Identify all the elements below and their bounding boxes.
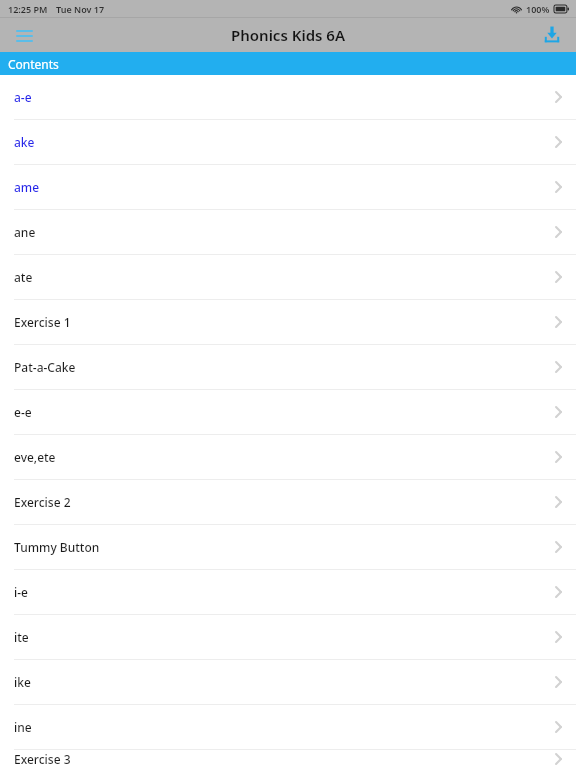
staticText: ine <box>14 719 32 735</box>
button[interactable]: Contents <box>0 52 576 75</box>
staticText: e-e <box>14 404 32 420</box>
staticText: a-e <box>14 89 32 105</box>
button[interactable]: Download <box>534 18 570 52</box>
button[interactable]: ake <box>0 120 576 164</box>
staticText: ane <box>14 224 36 240</box>
staticText: ake <box>14 134 35 150</box>
button[interactable]: a-e <box>0 75 576 119</box>
staticText: Exercise 1 <box>14 314 71 330</box>
staticText: ate <box>14 269 33 285</box>
button[interactable]: ike <box>0 660 576 704</box>
button[interactable]: ite <box>0 615 576 659</box>
button[interactable]: Menu <box>6 18 42 52</box>
staticText: 12:25 PM <box>8 3 48 15</box>
button[interactable]: Pat-a-Cake <box>0 345 576 389</box>
button[interactable]: ine <box>0 705 576 749</box>
button[interactable]: ame <box>0 165 576 209</box>
staticText: Exercise 2 <box>14 494 71 510</box>
staticText: ike <box>14 674 31 690</box>
button[interactable]: Exercise 3 <box>0 750 576 768</box>
staticText: Pat-a-Cake <box>14 359 76 375</box>
button[interactable]: eve,ete <box>0 435 576 479</box>
button[interactable]: Exercise 2 <box>0 480 576 524</box>
button[interactable]: Tummy Button <box>0 525 576 569</box>
staticText: eve,ete <box>14 449 56 465</box>
staticText: Tummy Button <box>14 539 100 555</box>
staticText: ame <box>14 179 40 195</box>
staticText: ite <box>14 629 29 645</box>
staticText: Tue Nov 17 <box>56 3 105 15</box>
staticText: Exercise 3 <box>14 751 71 767</box>
staticText: 100% <box>526 3 550 15</box>
button[interactable]: i-e <box>0 570 576 614</box>
button[interactable]: ate <box>0 255 576 299</box>
button[interactable]: ane <box>0 210 576 254</box>
button[interactable]: e-e <box>0 390 576 434</box>
button[interactable]: Exercise 1 <box>0 300 576 344</box>
staticText: Phonics Kids 6A <box>231 25 345 45</box>
staticText: Contents <box>8 56 59 72</box>
staticText: i-e <box>14 584 28 600</box>
